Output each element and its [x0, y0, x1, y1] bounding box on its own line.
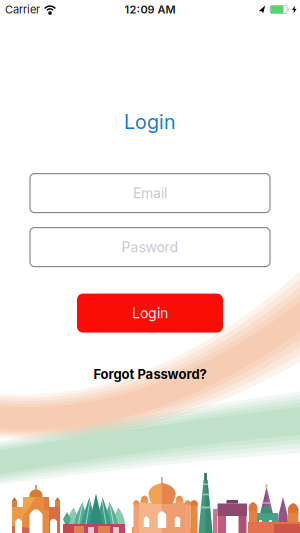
staticText: Email [30, 183, 72, 203]
staticText: Pasword [121, 239, 178, 255]
staticText: Email [133, 185, 167, 201]
staticText: Forgot Password? [93, 367, 206, 382]
textField[interactable]: Email [30, 183, 270, 203]
staticText: Login [124, 110, 176, 134]
staticText: Carrier [5, 3, 40, 16]
staticText: Login [132, 305, 168, 321]
staticText: Pasword [30, 237, 98, 257]
textField[interactable]: Pasword [30, 237, 270, 257]
staticText: 12:09 AM [124, 3, 175, 16]
button[interactable]: Login [77, 294, 223, 333]
button[interactable]: Forgot Password? [93, 367, 206, 382]
